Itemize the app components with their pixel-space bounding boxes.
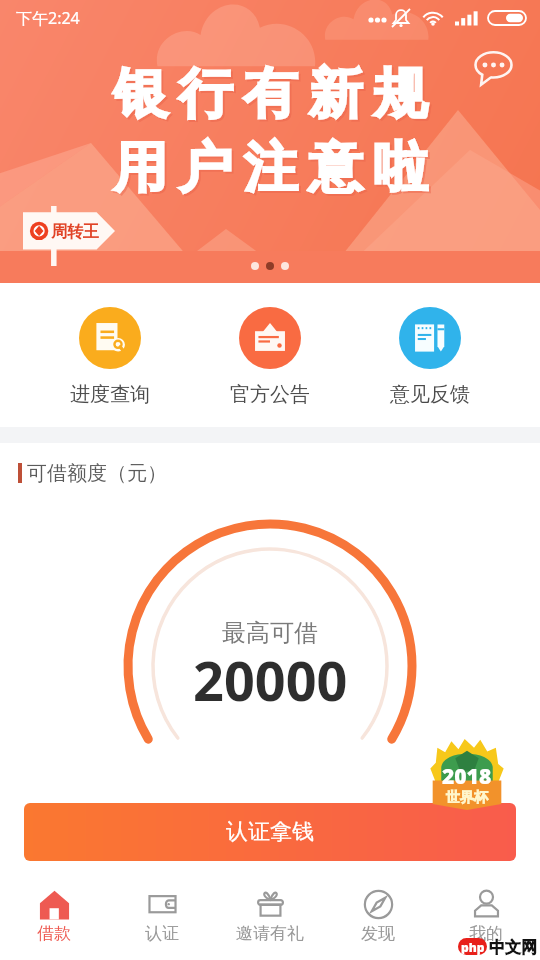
staticText: 发现 (361, 923, 395, 944)
staticText: 认证拿钱 (226, 818, 314, 846)
staticText: 20000 (193, 643, 348, 717)
staticText: 2018 (442, 762, 492, 791)
staticText: 可借额度（元） (27, 461, 167, 486)
button[interactable]: 官方公告 (190, 283, 350, 407)
staticText: 用户注意啦 (108, 134, 433, 202)
staticText: 世界杯 (446, 789, 488, 807)
staticText: 下午2:24 (16, 7, 80, 29)
button[interactable]: 认证 (108, 863, 216, 960)
staticText: 最高可借 (222, 618, 318, 648)
staticText: 用户注意啦 (110, 136, 435, 204)
button[interactable]: 邀请有礼 (216, 863, 324, 960)
staticText: 意见反馈 (390, 382, 470, 407)
staticText: 进度查询 (70, 382, 150, 407)
staticText: 我的 (469, 923, 503, 944)
staticText: 借款 (37, 923, 71, 944)
button[interactable]: 我的 (432, 863, 540, 960)
button[interactable]: 进度查询 (30, 283, 190, 407)
button[interactable]: 认证拿钱 (24, 803, 516, 861)
staticText: 认证 (145, 923, 179, 944)
staticText: 银行有新规 (108, 60, 433, 128)
staticText: 官方公告 (230, 382, 310, 407)
button[interactable]: 意见反馈 (350, 283, 510, 407)
staticText: 银行有新规 (110, 62, 435, 130)
button[interactable]: 发现 (324, 863, 432, 960)
button[interactable]: 消息 (471, 46, 516, 91)
button[interactable]: 借款 (0, 863, 108, 960)
staticText: 周转王 (51, 222, 99, 242)
staticText: php (461, 939, 485, 955)
staticText: 邀请有礼 (236, 923, 304, 944)
staticText: 中文网 (489, 938, 537, 958)
